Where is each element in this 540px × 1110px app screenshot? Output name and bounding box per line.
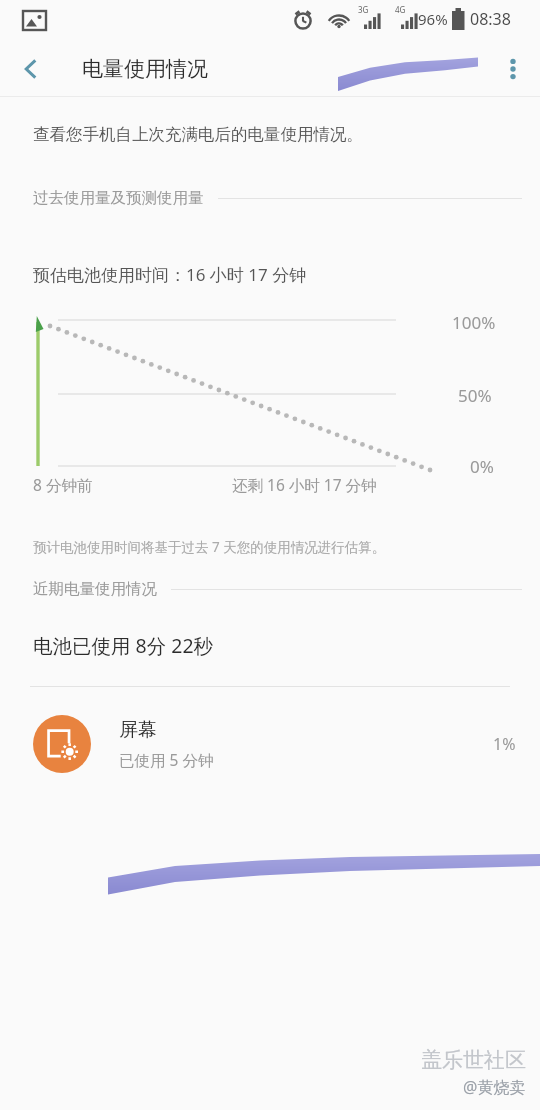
staticText: 8 分钟前 <box>33 474 93 495</box>
staticText: 查看您手机自上次充满电后的电量使用情况。 <box>33 124 363 145</box>
button[interactable]: 屏幕 <box>0 701 540 787</box>
staticText: 预计电池使用时间将基于过去 7 天您的使用情况进行估算。 <box>33 538 386 556</box>
staticText: 4G <box>395 4 406 15</box>
staticText: 还剩 16 小时 17 分钟 <box>232 474 377 495</box>
button[interactable]: 返回 <box>0 42 62 96</box>
staticText: 0% <box>470 455 494 478</box>
staticText: 近期电量使用情况 <box>33 579 157 599</box>
staticText: 电池已使用 8分 22秒 <box>33 632 214 659</box>
staticText: 100% <box>452 311 496 334</box>
staticText: 过去使用量及预测使用量 <box>33 188 204 208</box>
staticText: @黄烧卖 <box>463 1076 526 1098</box>
staticText: 屏幕 <box>119 718 157 742</box>
staticText: 50% <box>458 384 492 407</box>
staticText: 已使用 5 分钟 <box>119 749 214 770</box>
staticText: 电量使用情况 <box>82 56 208 82</box>
staticText: 1% <box>493 733 516 755</box>
staticText: 08:38 <box>470 8 511 30</box>
button[interactable]: 更多选项 <box>486 42 540 96</box>
staticText: 3G <box>358 4 369 15</box>
staticText: 盖乐世社区 <box>421 1047 526 1073</box>
staticText: 96% <box>418 9 448 29</box>
staticText: 预估电池使用时间：16 小时 17 分钟 <box>33 263 307 286</box>
